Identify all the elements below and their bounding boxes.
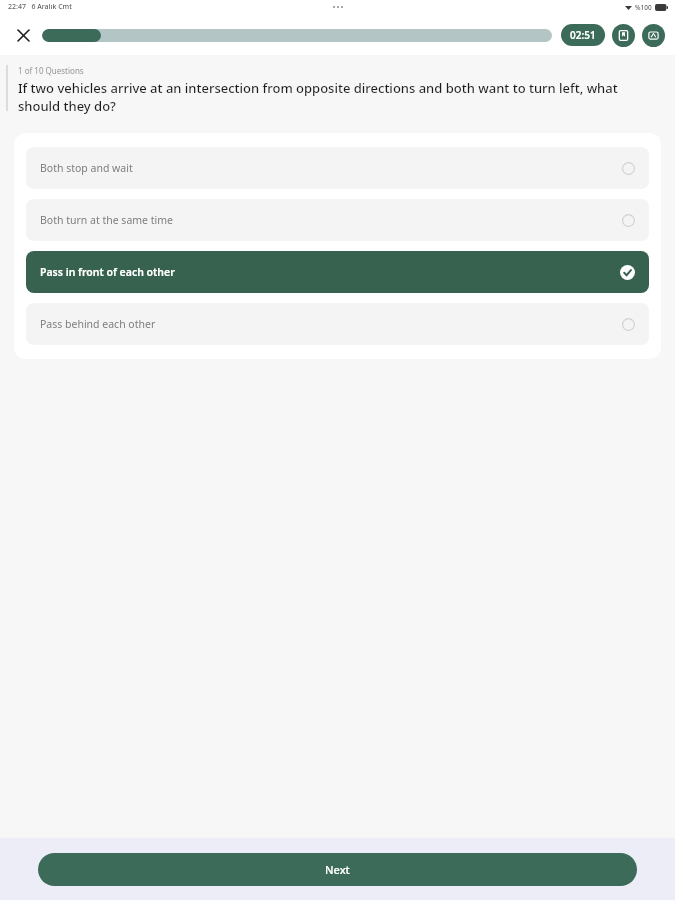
staticText: Pass in front of each other [40,265,620,279]
staticText: Both turn at the same time [40,213,622,227]
staticText: Next [325,862,350,877]
button[interactable]: Both stop and wait [26,147,649,189]
button[interactable]: Translate [642,24,665,47]
staticText: 22:47 6 Aralık Cmt [8,2,72,12]
button[interactable]: Bookmark [612,24,635,47]
button[interactable]: Both turn at the same time [26,199,649,241]
staticText: If two vehicles arrive at an intersectio… [18,79,653,115]
staticText: %100 [635,3,652,12]
button[interactable]: 02:51 [561,24,605,46]
staticText: 1 of 10 Questions [18,65,84,76]
button[interactable]: Pass behind each other [26,303,649,345]
staticText: Both stop and wait [40,161,622,175]
button[interactable]: Pass in front of each other [26,251,649,293]
button[interactable]: Close [10,22,36,48]
button[interactable]: Next [38,853,637,886]
staticText: Pass behind each other [40,317,622,331]
staticText: 02:51 [570,28,596,42]
